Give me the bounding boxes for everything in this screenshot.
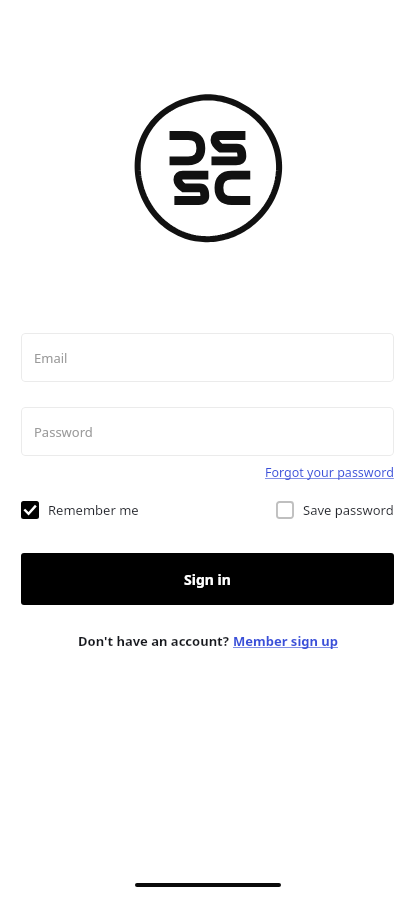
button[interactable]: Save password [276,498,394,522]
button[interactable]: Email [21,333,394,382]
staticText: Email [34,349,68,367]
button[interactable]: Member sign up [233,632,338,650]
staticText: Remember me [48,501,139,519]
button[interactable]: Password [21,407,394,456]
staticText: Member sign up [233,632,338,650]
staticText: Don't have an account? [78,632,233,650]
button[interactable]: Remember me [21,498,139,522]
staticText: Forgot your password [265,464,394,481]
staticText: Save password [303,501,394,519]
staticText: Password [34,423,93,441]
staticText: Sign in [184,570,231,589]
button[interactable]: Forgot your password [265,462,394,483]
button[interactable]: Sign in [21,553,394,605]
other: DSSC logo [132,92,284,244]
